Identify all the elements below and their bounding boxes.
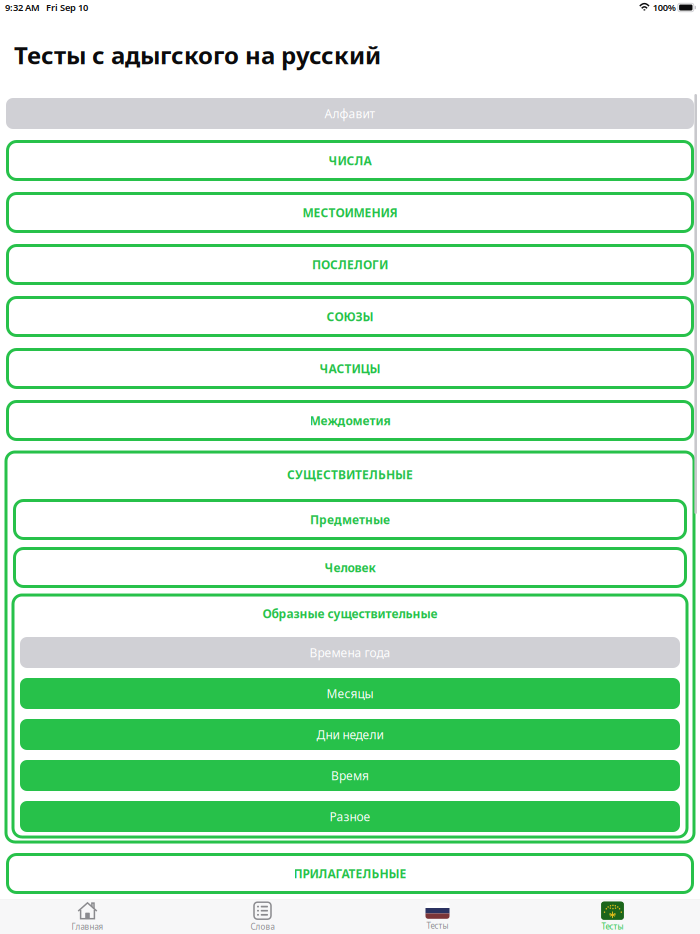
- staticText: 9:32 AM: [5, 1, 40, 14]
- button[interactable]: Предметные: [13, 499, 687, 540]
- button[interactable]: Слова: [175, 899, 350, 934]
- staticText: СОЮЗЫ: [326, 308, 373, 324]
- staticText: СУЩЕСТВИТЕЛЬНЫЕ: [287, 466, 413, 482]
- staticText: Тесты с адыгского на русский: [14, 39, 381, 71]
- staticText: Слова: [250, 921, 274, 932]
- staticText: Месяцы: [326, 685, 373, 701]
- button[interactable]: ЧИСЛА: [6, 140, 694, 181]
- staticText: Главная: [71, 921, 103, 932]
- button[interactable]: Дни недели: [20, 719, 680, 750]
- staticText: МЕСТОИМЕНИЯ: [302, 204, 397, 220]
- button[interactable]: Время: [20, 760, 680, 791]
- button[interactable]: Времена года: [20, 637, 680, 668]
- staticText: Разное: [329, 808, 370, 824]
- staticText: Fri Sep 10: [40, 1, 88, 14]
- staticText: 100%: [653, 1, 676, 14]
- staticText: Образные существительные: [262, 605, 437, 621]
- staticText: ПРИЛАГАТЕЛЬНЫЕ: [293, 865, 406, 881]
- button[interactable]: СУЩЕСТВИТЕЛЬНЫЕ: [13, 457, 687, 492]
- button[interactable]: ЧАСТИЦЫ: [6, 348, 694, 389]
- staticText: Алфавит: [324, 105, 375, 121]
- staticText: ЧАСТИЦЫ: [319, 360, 380, 376]
- button[interactable]: ПОСЛЕЛОГИ: [6, 244, 694, 285]
- staticText: Тесты: [426, 920, 448, 931]
- button[interactable]: СОЮЗЫ: [6, 296, 694, 337]
- staticText: Время: [331, 767, 369, 783]
- button[interactable]: Человек: [13, 547, 687, 588]
- staticText: Времена года: [309, 644, 390, 660]
- button[interactable]: Тесты: [350, 899, 525, 934]
- staticText: ПОСЛЕЛОГИ: [312, 256, 388, 272]
- button[interactable]: Главная: [0, 899, 175, 934]
- staticText: Тесты: [601, 921, 623, 932]
- button[interactable]: МЕСТОИМЕНИЯ: [6, 192, 694, 233]
- button[interactable]: Разное: [20, 801, 680, 832]
- button[interactable]: Алфавит: [6, 98, 694, 129]
- staticText: Предметные: [310, 511, 390, 527]
- staticText: Дни недели: [316, 726, 383, 742]
- staticText: Междометия: [309, 412, 390, 428]
- button[interactable]: Месяцы: [20, 678, 680, 709]
- button[interactable]: ГЛАГОЛЫ: [6, 905, 694, 934]
- button[interactable]: Тесты: [525, 899, 700, 934]
- staticText: ЧИСЛА: [328, 152, 371, 168]
- button[interactable]: Образные существительные: [20, 600, 680, 627]
- button[interactable]: Междометия: [6, 400, 694, 441]
- staticText: Человек: [324, 559, 375, 575]
- button[interactable]: ПРИЛАГАТЕЛЬНЫЕ: [6, 853, 694, 894]
